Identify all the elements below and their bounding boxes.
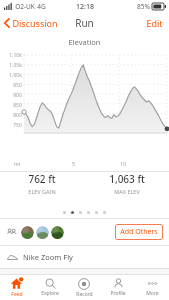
staticText: 1,063 ft — [109, 172, 145, 186]
staticText: More — [146, 290, 159, 297]
button[interactable]: Profile — [101, 277, 135, 298]
button[interactable]: Discussion — [0, 14, 64, 32]
staticText: 5 — [72, 161, 75, 168]
staticText: 85% — [137, 2, 150, 11]
staticText: MAX ELEV — [114, 188, 140, 195]
staticText: Record — [76, 291, 93, 298]
staticText: mi — [14, 161, 20, 168]
staticText: 1.10k — [9, 52, 22, 59]
button[interactable]: Nike Zoom Fly — [0, 246, 169, 268]
button[interactable]: Feed — [0, 276, 33, 299]
staticText: Discussion — [12, 17, 58, 29]
button[interactable]: Add Others — [115, 224, 163, 240]
staticText: 750 — [13, 122, 22, 129]
staticText: Edit — [146, 17, 163, 29]
staticText: Explore — [41, 290, 59, 297]
staticText: Profile — [110, 290, 126, 297]
staticText: 950 — [13, 82, 22, 89]
staticText: 800 — [13, 112, 22, 119]
staticText: Add Others — [120, 227, 158, 237]
staticText: Run — [75, 16, 94, 30]
staticText: 1.00k — [9, 72, 22, 79]
staticText: Nike Zoom Fly — [23, 252, 73, 262]
staticText: 762 ft — [28, 172, 56, 186]
staticText: Feed — [11, 291, 23, 298]
button[interactable]: Record — [67, 277, 101, 299]
staticText: Elevation — [68, 37, 101, 47]
button[interactable]: Athlete — [36, 226, 49, 239]
staticText: ELEV GAIN — [28, 188, 56, 195]
other: Group — [6, 227, 17, 238]
staticText: 10 — [120, 161, 126, 168]
staticText: 850 — [13, 102, 22, 109]
staticText: 4G — [37, 2, 46, 11]
button[interactable]: 762 ft — [0, 172, 84, 195]
button[interactable]: Athlete — [21, 226, 34, 239]
button[interactable]: Edit — [140, 14, 169, 32]
button[interactable]: 1,063 ft — [84, 172, 169, 195]
staticText: 900 — [13, 92, 22, 99]
staticText: 12:18 — [76, 2, 94, 12]
staticText: 1.05k — [9, 62, 22, 69]
staticText: O2-UK — [15, 2, 35, 11]
button[interactable]: Athlete — [51, 226, 64, 239]
button[interactable]: Explore — [33, 277, 67, 298]
button[interactable]: More — [135, 277, 169, 298]
